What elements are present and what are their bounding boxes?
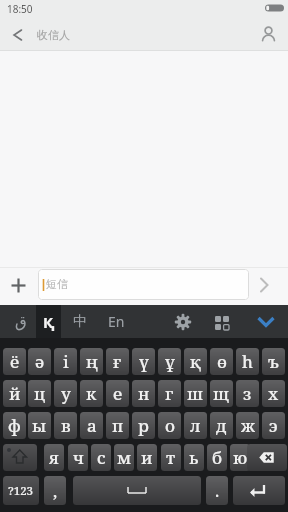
button[interactable]: м bbox=[114, 444, 134, 471]
staticText: й bbox=[9, 382, 21, 405]
button[interactable] bbox=[254, 276, 274, 294]
button[interactable]: ң bbox=[80, 348, 103, 375]
staticText: т bbox=[166, 446, 176, 469]
button[interactable]: , bbox=[44, 476, 66, 505]
button[interactable]: ү bbox=[132, 348, 155, 375]
staticText: д bbox=[216, 414, 227, 437]
staticText: м bbox=[117, 446, 132, 469]
button[interactable]: е bbox=[106, 380, 129, 407]
staticText: і bbox=[63, 350, 69, 373]
staticText: 中 bbox=[73, 313, 87, 331]
staticText: ш bbox=[187, 382, 204, 405]
button[interactable]: и bbox=[137, 444, 157, 471]
button[interactable]: ц bbox=[28, 380, 51, 407]
button[interactable]: н bbox=[132, 380, 155, 407]
button[interactable]: с bbox=[91, 444, 111, 471]
staticText: ?123 bbox=[8, 483, 34, 499]
button[interactable]: 中 bbox=[67, 305, 92, 338]
button[interactable]: з bbox=[236, 380, 259, 407]
button[interactable]: л bbox=[184, 412, 207, 439]
button[interactable]: ш bbox=[184, 380, 207, 407]
button[interactable]: ъ bbox=[262, 348, 285, 375]
button[interactable]: ь bbox=[184, 444, 204, 471]
button[interactable]: ә bbox=[28, 348, 51, 375]
button[interactable]: э bbox=[262, 412, 285, 439]
button[interactable] bbox=[6, 26, 26, 44]
button[interactable] bbox=[258, 24, 278, 44]
staticText: ф bbox=[8, 414, 21, 437]
staticText: я bbox=[49, 446, 59, 469]
staticText: ь bbox=[189, 446, 199, 469]
staticText: р bbox=[138, 414, 149, 437]
button[interactable]: ы bbox=[28, 412, 51, 439]
button[interactable]: ф bbox=[3, 412, 26, 439]
staticText: с bbox=[97, 446, 106, 469]
button[interactable]: к bbox=[80, 380, 103, 407]
staticText: қ bbox=[190, 350, 202, 373]
button[interactable] bbox=[247, 444, 287, 471]
button[interactable] bbox=[174, 313, 192, 331]
button[interactable] bbox=[214, 315, 230, 331]
button[interactable]: г bbox=[158, 380, 181, 407]
staticText: . bbox=[215, 480, 220, 502]
button[interactable]: ё bbox=[3, 348, 26, 375]
button[interactable]: т bbox=[161, 444, 181, 471]
button[interactable]: қ bbox=[184, 348, 207, 375]
button[interactable]: о bbox=[158, 412, 181, 439]
staticText: б bbox=[212, 446, 223, 469]
button[interactable]: Қ bbox=[36, 305, 61, 338]
button[interactable]: щ bbox=[210, 380, 233, 407]
staticText: ч bbox=[73, 446, 84, 469]
staticText: ы bbox=[32, 414, 47, 437]
staticText: з bbox=[243, 382, 252, 405]
staticText: ц bbox=[34, 382, 46, 405]
staticText: ү bbox=[139, 350, 149, 373]
button[interactable]: а bbox=[80, 412, 103, 439]
button[interactable]: En bbox=[103, 305, 130, 338]
staticText: г bbox=[165, 382, 174, 405]
button[interactable]: 短信 bbox=[38, 269, 249, 300]
button[interactable]: у bbox=[54, 380, 77, 407]
staticText: ә bbox=[35, 350, 45, 373]
staticText: о bbox=[165, 414, 175, 437]
button[interactable] bbox=[252, 310, 280, 334]
button[interactable]: . bbox=[206, 476, 228, 505]
staticText: и bbox=[141, 446, 153, 469]
button[interactable]: һ bbox=[236, 348, 259, 375]
staticText: 收信人 bbox=[37, 28, 70, 42]
button[interactable]: д bbox=[210, 412, 233, 439]
staticText: ұ bbox=[165, 350, 175, 373]
button[interactable] bbox=[233, 476, 285, 505]
button[interactable]: і bbox=[54, 348, 77, 375]
staticText: , bbox=[53, 480, 58, 502]
button[interactable]: п bbox=[106, 412, 129, 439]
button[interactable]: й bbox=[3, 380, 26, 407]
button[interactable]: ч bbox=[68, 444, 88, 471]
button[interactable]: р bbox=[132, 412, 155, 439]
staticText: у bbox=[61, 382, 71, 405]
staticText: а bbox=[87, 414, 97, 437]
button[interactable] bbox=[3, 444, 37, 471]
button[interactable]: ق bbox=[8, 305, 33, 338]
button[interactable]: ?123 bbox=[3, 476, 39, 505]
staticText: ё bbox=[10, 350, 20, 373]
button[interactable]: ғ bbox=[106, 348, 129, 375]
staticText: ъ bbox=[268, 350, 279, 373]
staticText: к bbox=[86, 382, 97, 405]
button[interactable] bbox=[73, 476, 201, 505]
button[interactable]: х bbox=[262, 380, 285, 407]
button[interactable]: б bbox=[207, 444, 227, 471]
button[interactable]: я bbox=[44, 444, 64, 471]
button[interactable]: ж bbox=[236, 412, 259, 439]
staticText: Қ bbox=[43, 312, 55, 332]
button[interactable]: ю bbox=[230, 444, 250, 471]
staticText: щ bbox=[213, 382, 230, 405]
button[interactable]: ұ bbox=[158, 348, 181, 375]
staticText: ң bbox=[86, 350, 98, 373]
button[interactable]: ө bbox=[210, 348, 233, 375]
staticText: ю bbox=[233, 446, 248, 469]
button[interactable] bbox=[9, 276, 28, 295]
staticText: 短信 bbox=[46, 277, 68, 291]
staticText: л bbox=[190, 414, 201, 437]
button[interactable]: в bbox=[54, 412, 77, 439]
